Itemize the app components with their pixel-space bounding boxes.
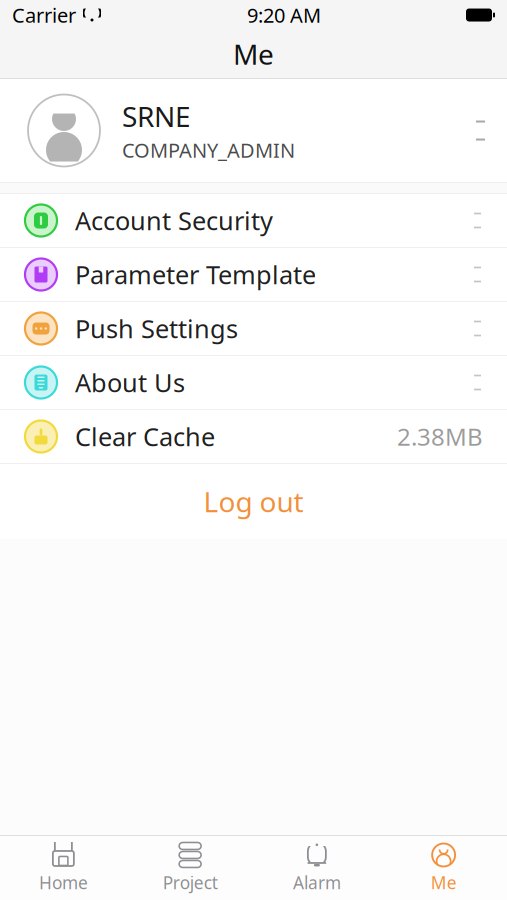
button[interactable]: Project — [127, 837, 254, 899]
staticText: Log out — [203, 483, 303, 520]
staticText: Account Security — [75, 204, 273, 237]
button[interactable]: Account Security — [0, 194, 507, 248]
staticText: 9:20 AM — [247, 2, 321, 28]
staticText: 2.38MB — [397, 421, 483, 452]
staticText: Me — [431, 871, 457, 894]
button[interactable]: Me — [380, 837, 507, 899]
staticText: Carrier — [12, 2, 76, 28]
button[interactable]: Clear Cache — [0, 410, 507, 464]
button[interactable]: SRNE — [0, 79, 507, 182]
staticText: Home — [39, 871, 88, 894]
staticText: Push Settings — [75, 312, 238, 345]
button[interactable]: Alarm — [253, 837, 380, 899]
button[interactable]: Home — [0, 837, 127, 899]
staticText: Clear Cache — [75, 420, 215, 453]
staticText: COMPANY_ADMIN — [122, 137, 295, 163]
staticText: Me — [233, 35, 274, 73]
button[interactable]: About Us — [0, 356, 507, 410]
staticText: Project — [163, 871, 218, 894]
staticText: Alarm — [293, 871, 341, 894]
staticText: About Us — [75, 366, 185, 399]
button[interactable]: Push Settings — [0, 302, 507, 356]
button[interactable]: Parameter Template — [0, 248, 507, 302]
staticText: Parameter Template — [75, 258, 316, 291]
staticText: SRNE — [122, 98, 191, 135]
button[interactable]: Log out — [0, 464, 507, 539]
